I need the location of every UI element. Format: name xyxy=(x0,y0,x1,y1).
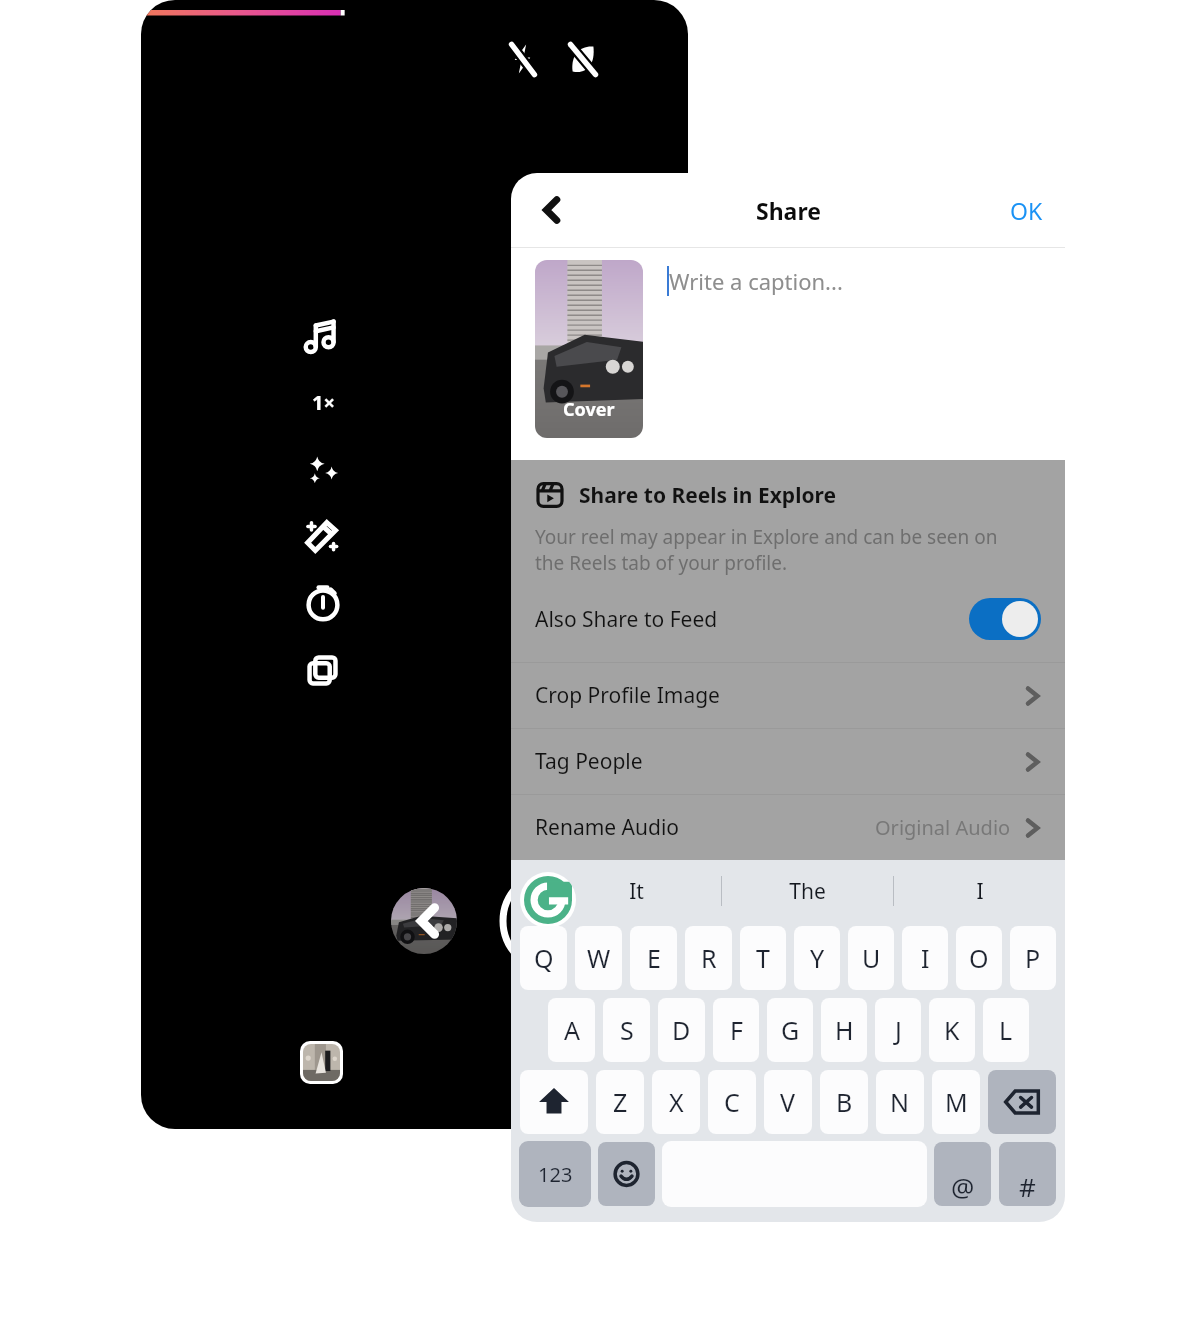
staticText: L xyxy=(999,1013,1013,1047)
staticText: U xyxy=(862,941,881,975)
staticText: Y xyxy=(810,941,825,975)
button[interactable]: 1× xyxy=(299,378,347,426)
button[interactable]: Effects off xyxy=(557,33,609,85)
button[interactable]: Crop Profile Image xyxy=(511,663,1065,728)
button[interactable]: T xyxy=(740,926,786,990)
button[interactable]: Emoji xyxy=(598,1142,655,1206)
staticText: F xyxy=(730,1013,743,1047)
staticText: Your reel may appear in Explore and can … xyxy=(535,524,1019,576)
staticText: N xyxy=(890,1085,910,1119)
button[interactable]: It xyxy=(551,860,721,922)
staticText: O xyxy=(969,941,989,975)
button[interactable]: Retouch xyxy=(299,512,347,560)
button[interactable]: K xyxy=(929,998,975,1062)
staticText: Tag People xyxy=(535,747,1023,776)
staticText: D xyxy=(672,1013,691,1047)
button[interactable]: Audio xyxy=(299,312,347,360)
button[interactable]: R xyxy=(685,926,732,990)
staticText: Q xyxy=(534,941,554,975)
button[interactable]: 123 xyxy=(519,1141,591,1207)
staticText: J xyxy=(895,1013,902,1047)
button[interactable]: O xyxy=(956,926,1002,990)
button[interactable]: Back xyxy=(523,184,575,236)
button[interactable]: Previous clip xyxy=(391,888,457,954)
button[interactable]: Grammarly xyxy=(524,876,572,924)
button[interactable]: The xyxy=(722,860,893,922)
button[interactable]: Cover xyxy=(535,260,643,438)
button[interactable]: Rename Audio xyxy=(511,795,1065,860)
staticText: I xyxy=(976,877,984,906)
button[interactable]: Flash off xyxy=(497,33,549,85)
button[interactable]: Z xyxy=(596,1070,644,1134)
button[interactable]: X xyxy=(652,1070,700,1134)
button[interactable]: V xyxy=(764,1070,812,1134)
staticText: OK xyxy=(1010,195,1043,226)
button[interactable]: M xyxy=(932,1070,980,1134)
staticText: B xyxy=(836,1085,853,1119)
button[interactable]: Share to Reels in Explore xyxy=(511,472,1065,514)
button[interactable]: G xyxy=(767,998,813,1062)
button[interactable]: F xyxy=(713,998,759,1062)
staticText: I xyxy=(921,941,930,975)
staticText: Write a caption... xyxy=(669,266,843,296)
button[interactable]: I xyxy=(894,860,1065,922)
staticText: K xyxy=(944,1013,960,1047)
button[interactable]: N xyxy=(876,1070,924,1134)
button[interactable]: Align xyxy=(299,645,347,693)
staticText: H xyxy=(835,1013,854,1047)
staticText: @ xyxy=(951,1169,975,1204)
staticText: G xyxy=(781,1013,800,1047)
staticText: C xyxy=(724,1085,740,1119)
staticText: T xyxy=(756,941,770,975)
button[interactable]: Timer xyxy=(299,578,347,626)
staticText: Share to Reels in Explore xyxy=(579,481,837,510)
staticText: # xyxy=(1019,1169,1036,1204)
button[interactable]: J xyxy=(875,998,921,1062)
button[interactable]: L xyxy=(983,998,1029,1062)
button[interactable]: D xyxy=(658,998,705,1062)
button[interactable]: Effects xyxy=(299,448,347,496)
staticText: E xyxy=(647,941,661,975)
button[interactable]: Also Share to Feed xyxy=(511,576,1065,662)
staticText: 1× xyxy=(312,389,335,416)
button[interactable]: P xyxy=(1010,926,1056,990)
button[interactable]: A xyxy=(548,998,595,1062)
staticText: Cover xyxy=(563,397,615,422)
staticText: Share xyxy=(756,195,821,226)
staticText: W xyxy=(587,941,611,975)
button[interactable]: C xyxy=(708,1070,756,1134)
staticText: The xyxy=(789,877,826,906)
button[interactable]: Tag People xyxy=(511,729,1065,794)
button[interactable]: Record reel xyxy=(501,870,603,972)
staticText: It xyxy=(629,877,644,906)
button[interactable]: B xyxy=(820,1070,868,1134)
button[interactable]: At sign xyxy=(934,1142,991,1206)
staticText: Also Share to Feed xyxy=(535,605,969,634)
staticText: A xyxy=(564,1013,580,1047)
button[interactable]: Backspace xyxy=(988,1070,1056,1134)
button[interactable]: Y xyxy=(794,926,840,990)
staticText: Z xyxy=(613,1085,628,1119)
button[interactable]: Gallery xyxy=(303,1044,340,1081)
staticText: R xyxy=(701,941,717,975)
staticText: Crop Profile Image xyxy=(535,681,1023,710)
staticText: S xyxy=(620,1013,634,1047)
staticText: P xyxy=(1025,941,1041,975)
button[interactable]: I xyxy=(902,926,948,990)
staticText: M xyxy=(945,1085,968,1119)
staticText: V xyxy=(780,1085,796,1119)
button[interactable]: Shift xyxy=(520,1070,588,1134)
button[interactable]: S xyxy=(603,998,650,1062)
button[interactable]: OK xyxy=(1002,187,1051,234)
button[interactable]: H xyxy=(821,998,867,1062)
staticText: 123 xyxy=(538,1161,573,1188)
button[interactable]: Hashtag xyxy=(999,1142,1056,1206)
staticText: X xyxy=(669,1085,684,1119)
staticText: Rename Audio xyxy=(535,813,875,842)
button[interactable]: E xyxy=(630,926,677,990)
button[interactable]: W xyxy=(575,926,622,990)
staticText: Original Audio xyxy=(875,814,1011,841)
button[interactable]: Q xyxy=(520,926,567,990)
button[interactable]: U xyxy=(848,926,894,990)
